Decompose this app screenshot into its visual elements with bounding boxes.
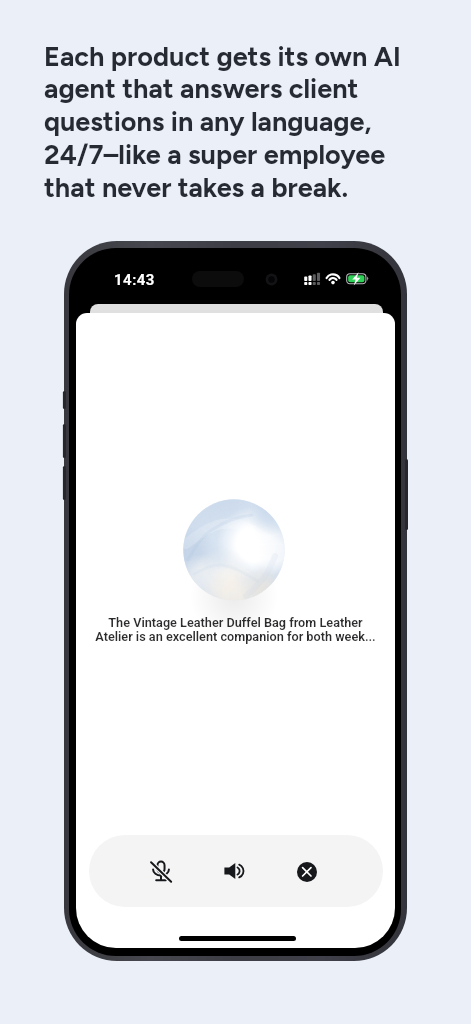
staticText: 14:43: [114, 271, 155, 289]
button[interactable]: End call: [285, 850, 329, 894]
button[interactable]: Speaker: [212, 849, 256, 893]
button[interactable]: Unmute microphone: [139, 849, 183, 893]
staticText: The Vintage Leather Duffel Bag from Leat…: [76, 615, 395, 644]
staticText: Each product gets its own AI agent that …: [44, 40, 401, 204]
